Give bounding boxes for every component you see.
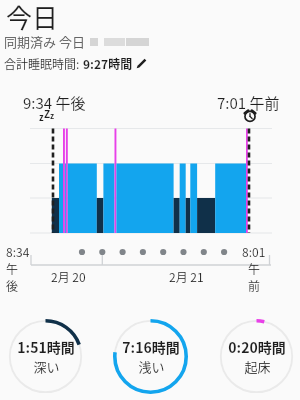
staticText: 9:34 午後 [23, 92, 86, 114]
staticText: 9:27時間 [83, 55, 133, 72]
staticText: 午 [6, 260, 19, 277]
staticText: 午 [248, 260, 261, 277]
staticText: Z [44, 106, 51, 120]
staticText: 2月 20 [51, 268, 86, 285]
button[interactable]: 編集 [136, 58, 147, 69]
staticText: 同期済み 今日 [4, 32, 85, 51]
staticText: 起床 [244, 357, 271, 376]
staticText: 0:20時間 [228, 337, 286, 357]
staticText: 1:51時間 [17, 337, 75, 357]
staticText: 2月 21 [169, 268, 204, 285]
staticText: 合計睡眠時間: [4, 55, 80, 72]
staticText: 7:16時間 [122, 337, 180, 357]
staticText: z [39, 111, 44, 124]
staticText: 7:01 午前 [217, 92, 280, 114]
staticText: 今日 [6, 0, 59, 36]
staticText: 深い [33, 357, 60, 376]
staticText: 浅い [138, 357, 165, 376]
button[interactable]: 7:16時間 [113, 319, 188, 394]
staticText: 8:01 [242, 243, 266, 260]
staticText: 8:34 [6, 243, 30, 260]
button[interactable]: 0:20時間 [219, 319, 294, 394]
staticText: 前 [248, 277, 261, 294]
other: アラーム [243, 108, 257, 122]
staticText: z [50, 110, 55, 122]
staticText: 後 [6, 277, 19, 294]
button[interactable]: 1:51時間 [8, 319, 83, 394]
